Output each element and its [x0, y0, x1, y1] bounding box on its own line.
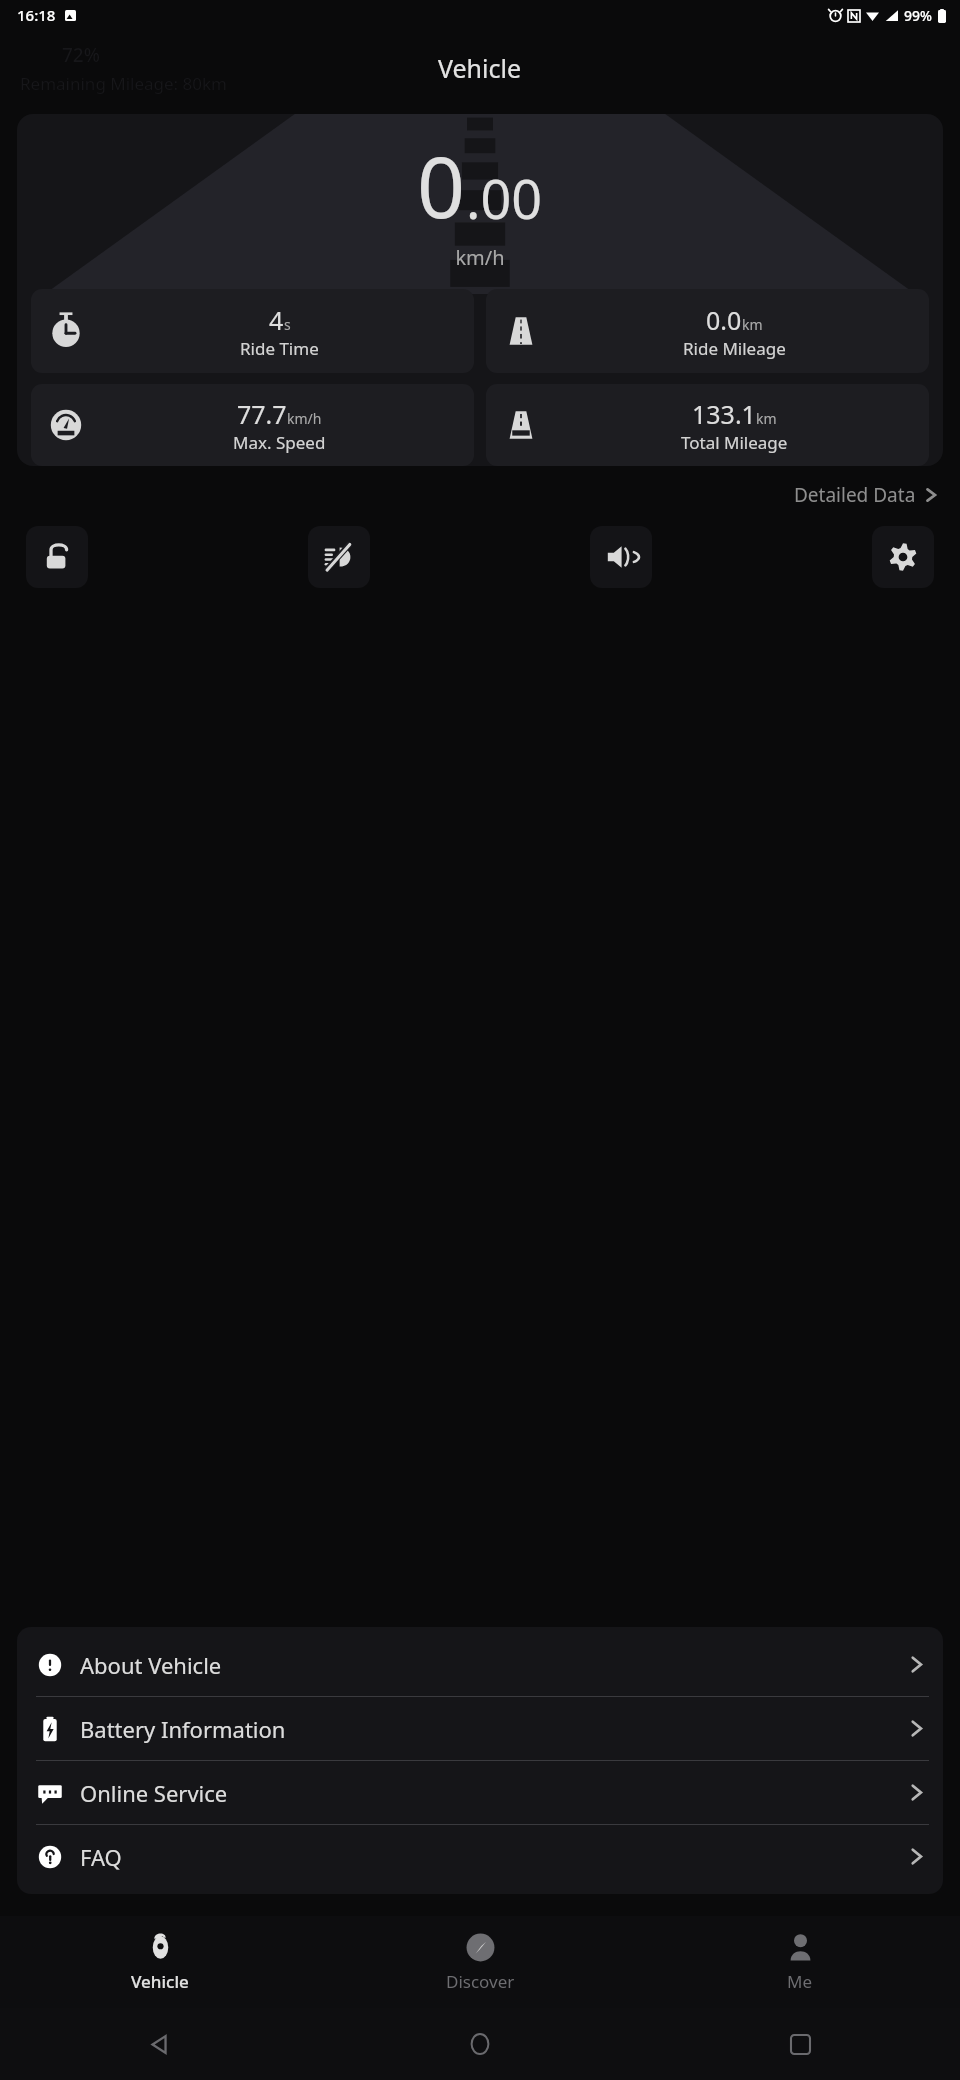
staticText: Battery Information [80, 1714, 908, 1744]
button[interactable]: Vehicle [0, 1916, 320, 2008]
button[interactable]: Me [640, 1916, 960, 2008]
button[interactable]: FAQ [17, 1825, 943, 1888]
staticText: Vehicle [131, 1970, 189, 1993]
button[interactable]: Unlock [26, 526, 88, 588]
button[interactable]: Battery Information [17, 1697, 943, 1760]
button[interactable]: About Vehicle [17, 1633, 943, 1696]
staticText: Discover [446, 1970, 515, 1993]
staticText: km/h [287, 409, 322, 428]
staticText: Vehicle [438, 51, 522, 85]
button[interactable]: Detailed Data [790, 476, 942, 514]
button[interactable]: 133.1 [486, 384, 929, 466]
staticText: Detailed Data [794, 482, 916, 508]
button[interactable]: 4 [31, 289, 474, 373]
button[interactable]: Discover [320, 1916, 640, 2008]
button[interactable]: Back [137, 2021, 183, 2067]
staticText: Total Mileage [681, 431, 788, 454]
staticText: 99% [904, 6, 932, 25]
staticText: 72% [62, 42, 100, 68]
staticText: Online Service [80, 1778, 908, 1808]
staticText: km [742, 315, 763, 334]
button[interactable]: Settings [872, 526, 934, 588]
staticText: Remaining Mileage: 80km [20, 72, 228, 95]
staticText: Max. Speed [233, 431, 326, 454]
button[interactable]: Headlight off [308, 526, 370, 588]
staticText: Ride Time [240, 337, 319, 360]
button[interactable]: Online Service [17, 1761, 943, 1824]
staticText: s [284, 315, 291, 334]
staticText: km/h [17, 244, 943, 271]
staticText: km [756, 409, 777, 428]
button[interactable]: Recent apps [777, 2021, 823, 2067]
button[interactable]: 0.0 [486, 289, 929, 373]
button[interactable]: Home [457, 2021, 503, 2067]
staticText: 77.7 [237, 397, 287, 431]
staticText: Me [787, 1970, 813, 1993]
staticText: 0 [417, 128, 466, 242]
staticText: FAQ [80, 1842, 908, 1872]
button[interactable]: Horn [590, 526, 652, 588]
staticText: 4 [269, 303, 284, 337]
staticText: 133.1 [692, 397, 756, 431]
button[interactable]: 77.7 [31, 384, 474, 466]
staticText: .00 [466, 161, 543, 235]
staticText: Ride Mileage [683, 337, 786, 360]
staticText: About Vehicle [80, 1650, 908, 1680]
staticText: 16:18 [17, 5, 56, 25]
staticText: 0.0 [706, 303, 742, 337]
